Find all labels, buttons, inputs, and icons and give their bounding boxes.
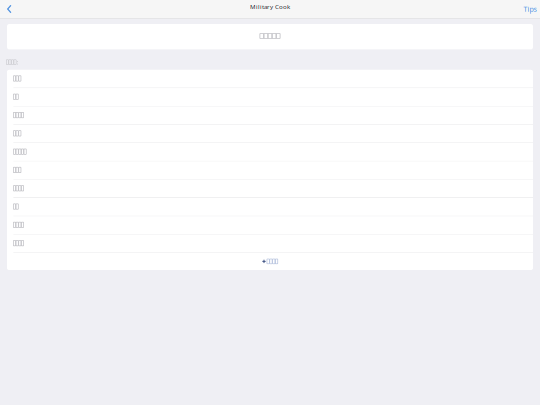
staticText: Tips bbox=[523, 4, 536, 14]
button[interactable] bbox=[7, 161, 533, 180]
button[interactable]: Tips bbox=[513, 1, 540, 17]
button[interactable] bbox=[7, 125, 533, 143]
button[interactable] bbox=[7, 106, 533, 125]
button[interactable] bbox=[7, 253, 533, 270]
button[interactable] bbox=[7, 216, 533, 235]
staticText: Military Cook bbox=[250, 2, 290, 11]
button[interactable] bbox=[7, 143, 533, 161]
button[interactable] bbox=[7, 235, 533, 253]
button[interactable]: Back bbox=[0, 0, 22, 18]
button[interactable] bbox=[7, 180, 533, 198]
button[interactable] bbox=[7, 70, 533, 88]
